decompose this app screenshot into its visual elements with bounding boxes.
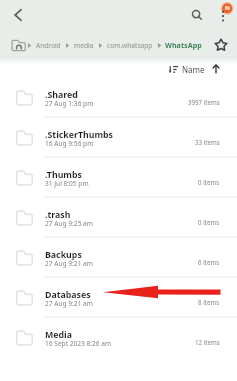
staticText: 0 items bbox=[198, 218, 220, 226]
staticText: 27 Aug 9:21 am bbox=[45, 259, 93, 268]
staticText: N bbox=[225, 4, 230, 12]
staticText: com.whatsapp bbox=[107, 41, 153, 50]
button[interactable]: Back bbox=[0, 0, 36, 29]
staticText: Backups bbox=[45, 249, 82, 261]
button[interactable]: Media bbox=[0, 318, 237, 358]
staticText: Name bbox=[182, 64, 205, 75]
staticText: media bbox=[74, 41, 94, 50]
staticText: 0 items bbox=[198, 178, 220, 186]
staticText: Android bbox=[36, 41, 61, 50]
button[interactable]: Databases bbox=[0, 278, 237, 318]
button[interactable]: .trash bbox=[0, 198, 237, 238]
button[interactable]: .Thumbs bbox=[0, 158, 237, 198]
button[interactable]: Name bbox=[167, 64, 207, 75]
button[interactable]: Android bbox=[36, 41, 61, 50]
staticText: WhatsApp bbox=[165, 40, 202, 50]
button[interactable]: More options bbox=[211, 0, 237, 29]
staticText: 31 Jul 8:05 pm bbox=[45, 179, 89, 188]
button[interactable]: .StickerThumbs bbox=[0, 118, 237, 158]
staticText: 6 items bbox=[198, 258, 220, 266]
staticText: Media bbox=[45, 329, 73, 341]
button[interactable]: Sort ascending bbox=[207, 60, 225, 78]
staticText: .StickerThumbs bbox=[45, 129, 114, 141]
staticText: 27 Aug 1:36 pm bbox=[45, 99, 94, 108]
button[interactable]: Backups bbox=[0, 238, 237, 278]
button[interactable]: Home bbox=[10, 37, 26, 53]
staticText: 12 items bbox=[195, 338, 220, 346]
staticText: .Shared bbox=[45, 89, 78, 101]
staticText: 33 items bbox=[195, 138, 220, 146]
button[interactable]: .Shared bbox=[0, 78, 237, 118]
staticText: 3997 items bbox=[188, 98, 220, 106]
staticText: Databases bbox=[45, 289, 91, 301]
staticText: .trash bbox=[45, 209, 71, 221]
button[interactable]: media bbox=[74, 41, 94, 50]
staticText: 8 items bbox=[198, 298, 220, 306]
staticText: .Thumbs bbox=[45, 169, 82, 181]
staticText: 16 Sept 2023 8:26 am bbox=[45, 339, 112, 348]
button[interactable]: com.whatsapp bbox=[107, 41, 153, 50]
button[interactable]: WhatsApp bbox=[165, 40, 202, 50]
staticText: 16 Aug 9:56 pm bbox=[45, 139, 94, 148]
button[interactable]: Favorite bbox=[213, 37, 229, 53]
button[interactable]: Search bbox=[183, 0, 211, 29]
staticText: 27 Aug 9:21 am bbox=[45, 299, 93, 308]
staticText: 27 Aug 9:25 am bbox=[45, 219, 93, 228]
